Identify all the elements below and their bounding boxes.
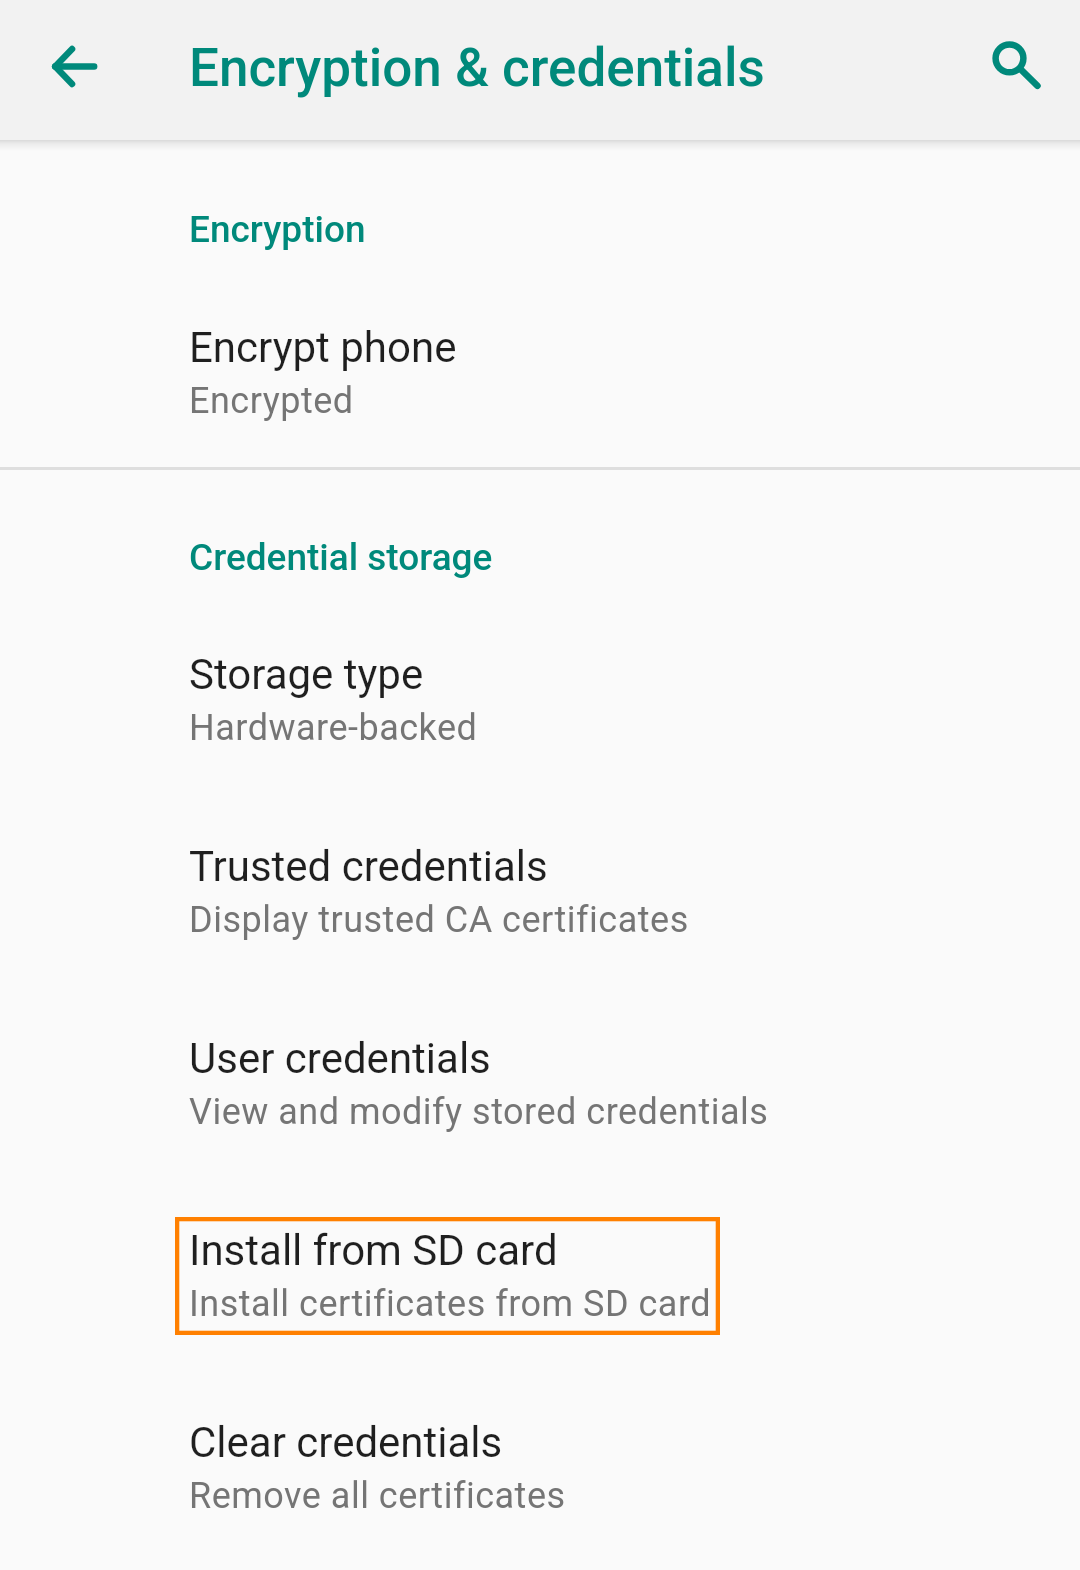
staticText: Encryption & credentials — [189, 37, 765, 99]
button[interactable]: Storage type — [0, 597, 1080, 789]
button[interactable]: Trusted credentials — [0, 789, 1080, 981]
staticText: Display trusted CA certificates — [189, 899, 689, 941]
staticText: Install from SD card — [189, 1226, 558, 1275]
staticText: Clear credentials — [189, 1418, 503, 1467]
staticText: Encryption — [189, 208, 366, 251]
button[interactable]: Encrypt phone — [0, 270, 1080, 462]
button[interactable]: User credentials — [0, 981, 1080, 1173]
staticText: Trusted credentials — [189, 842, 548, 891]
button[interactable]: Clear credentials — [0, 1365, 1080, 1557]
staticText: Remove all certificates — [189, 1475, 566, 1517]
staticText: View and modify stored credentials — [189, 1091, 769, 1133]
button[interactable]: Install from SD card — [0, 1173, 1080, 1365]
staticText: User credentials — [189, 1034, 491, 1083]
staticText: Credential storage — [189, 536, 493, 579]
staticText: Hardware-backed — [189, 707, 478, 749]
button[interactable]: Search — [963, 11, 1057, 105]
staticText: Encrypt phone — [189, 323, 457, 372]
staticText: Install certificates from SD card — [189, 1283, 712, 1325]
button[interactable]: Back — [26, 20, 120, 114]
staticText: Encrypted — [189, 380, 354, 422]
staticText: Storage type — [189, 650, 424, 699]
